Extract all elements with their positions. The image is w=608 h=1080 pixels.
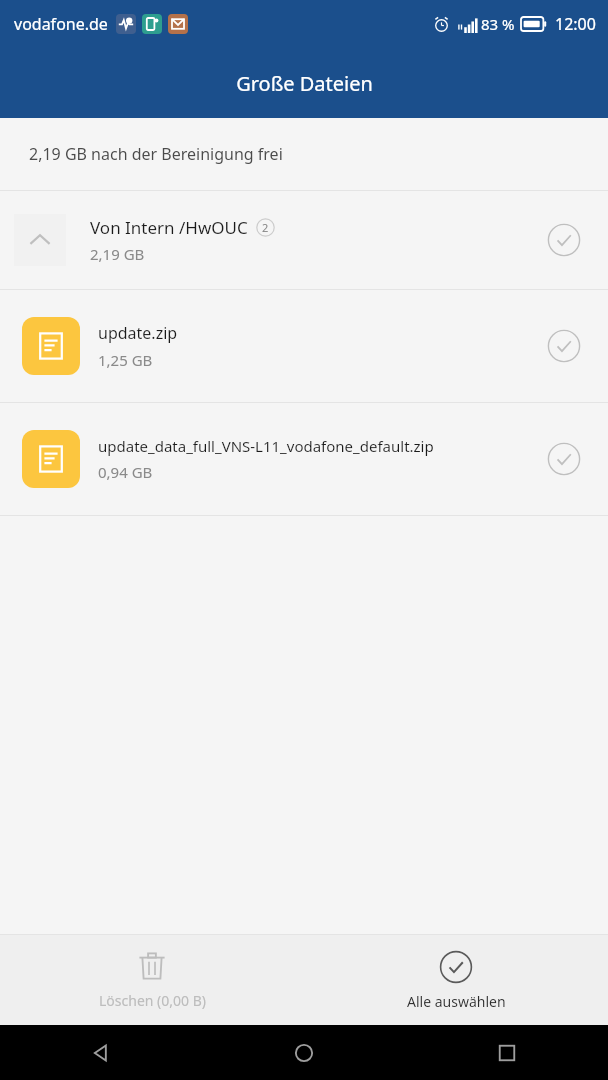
button[interactable]: Auswählen — [544, 326, 584, 366]
button[interactable]: Auswählen — [544, 220, 584, 260]
button[interactable]: Zurück — [0, 1025, 202, 1080]
staticText: 12:00 — [555, 13, 596, 35]
button[interactable]: update_data_full_VNS-L11_vodafone_defaul… — [0, 403, 608, 515]
staticText: update_data_full_VNS-L11_vodafone_defaul… — [98, 436, 434, 456]
button[interactable]: Übersicht — [405, 1025, 608, 1080]
staticText: Löschen (0,00 B) — [99, 991, 206, 1010]
staticText: vodafone.de — [14, 13, 108, 35]
button[interactable]: Auswählen — [544, 439, 584, 479]
button[interactable]: update.zip — [0, 290, 608, 402]
staticText: 2 — [262, 220, 269, 235]
staticText: 0,94 GB — [98, 462, 153, 482]
button[interactable]: Alle auswählen — [304, 935, 608, 1025]
staticText: 1,25 GB — [98, 350, 153, 370]
button[interactable]: Löschen (0,00 B) — [0, 935, 304, 1025]
staticText: Alle auswählen — [407, 992, 506, 1011]
staticText: update.zip — [98, 322, 178, 344]
button[interactable]: Startbildschirm — [202, 1025, 405, 1080]
staticText: Große Dateien — [236, 70, 373, 97]
staticText: Von Intern /HwOUC — [90, 216, 248, 239]
staticText: 83 % — [481, 14, 515, 34]
staticText: 2,19 GB — [90, 244, 145, 264]
staticText: 2,19 GB nach der Bereinigung frei — [29, 143, 283, 165]
button[interactable]: Von Intern /HwOUC — [0, 191, 608, 289]
